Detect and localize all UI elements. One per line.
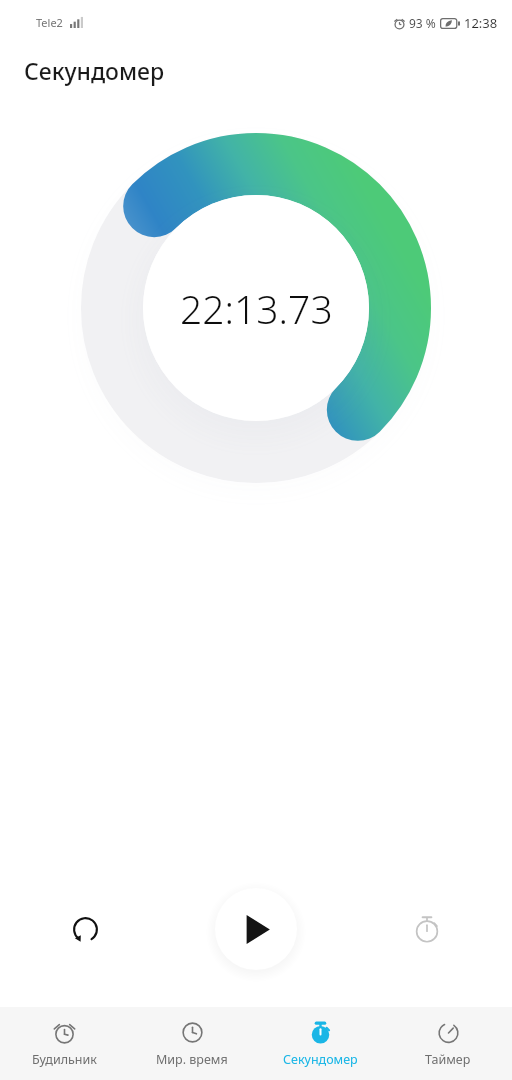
staticText: Будильник	[32, 1051, 97, 1068]
staticText: 12:38	[464, 14, 498, 32]
button[interactable]: Будильник	[0, 1007, 128, 1080]
staticText: Tele2	[36, 15, 63, 30]
staticText: Таймер	[425, 1051, 471, 1068]
button[interactable]: Секундомер	[256, 1007, 384, 1080]
button[interactable]: Start	[215, 888, 297, 970]
button[interactable]: Таймер	[384, 1007, 512, 1080]
staticText: 22:13.73	[180, 282, 333, 335]
staticText: Секундомер	[283, 1051, 358, 1068]
staticText: 93 %	[409, 15, 436, 31]
button[interactable]: Lap	[399, 901, 455, 957]
button[interactable]: Reset	[57, 901, 113, 957]
button[interactable]: Мир. время	[128, 1007, 256, 1080]
staticText: Мир. время	[156, 1051, 228, 1068]
staticText: Секундомер	[24, 55, 165, 86]
